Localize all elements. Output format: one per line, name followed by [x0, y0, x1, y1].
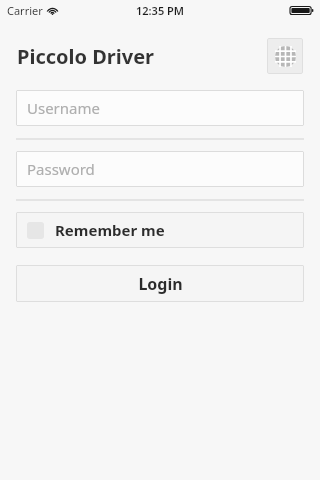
button[interactable]: Password — [16, 151, 304, 187]
staticText: Password — [27, 159, 95, 179]
staticText: 12:35 PM — [136, 3, 185, 18]
staticText: Username — [27, 98, 100, 118]
staticText: Carrier — [7, 3, 43, 18]
button[interactable]: Login — [16, 265, 304, 302]
staticText: Login — [138, 273, 183, 295]
button[interactable]: Change language — [267, 38, 303, 74]
staticText: Remember me — [55, 220, 165, 240]
button[interactable]: Username — [16, 90, 304, 126]
button[interactable]: Remember me — [16, 212, 304, 248]
staticText: Piccolo Driver — [17, 43, 155, 70]
